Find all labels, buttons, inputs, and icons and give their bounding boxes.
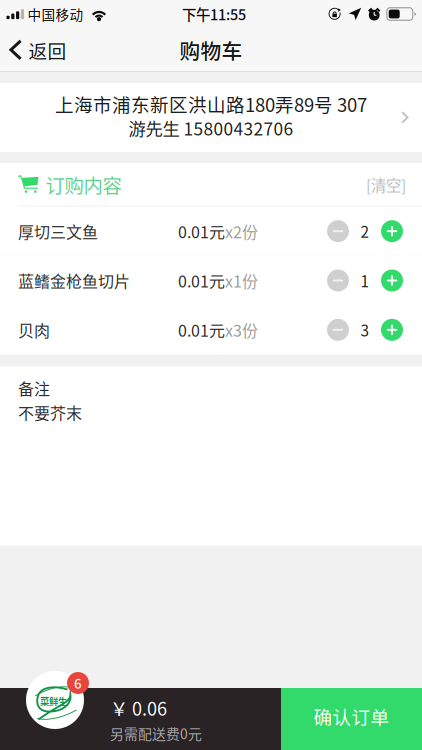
staticText: 上海市浦东新区洪山路180弄89号 307 — [55, 90, 367, 117]
staticText: 备注 — [18, 376, 50, 400]
button[interactable]: Increase quantity — [381, 269, 403, 291]
staticText: 另需配送费0元 — [110, 723, 202, 743]
staticText: 下午11:55 — [182, 4, 246, 24]
button[interactable]: Increase quantity — [381, 319, 403, 341]
staticText: 购物车 — [179, 35, 242, 65]
staticText: 游先生 15800432706 — [128, 115, 293, 140]
staticText: 中国移动 — [27, 4, 83, 24]
staticText: 菜鲜生 — [40, 694, 67, 708]
staticText: 0.01元 — [178, 220, 225, 243]
staticText: 返回 — [28, 36, 66, 63]
button[interactable]: Increase quantity — [381, 220, 403, 242]
staticText: x2份 — [225, 220, 258, 243]
staticText: [清空] — [366, 174, 406, 196]
staticText: 厚切三文鱼 — [18, 220, 98, 243]
staticText: x1份 — [225, 269, 258, 292]
staticText: 6 — [74, 673, 82, 693]
button[interactable]: Decrease quantity — [327, 319, 349, 341]
staticText: 2 — [360, 220, 369, 242]
staticText: 不要芥末 — [18, 401, 82, 424]
staticText: 贝肉 — [18, 318, 50, 341]
staticText: 1 — [360, 269, 369, 292]
button[interactable]: 上海市浦东新区洪山路180弄89号 307 — [0, 83, 422, 152]
button[interactable]: Decrease quantity — [327, 220, 349, 242]
button[interactable]: 确认订单 — [281, 688, 422, 750]
staticText: 0.01元 — [178, 318, 225, 341]
staticText: ￥ 0.06 — [110, 695, 167, 721]
staticText: x3份 — [225, 318, 258, 341]
button[interactable]: [清空] — [350, 163, 422, 207]
staticText: 3 — [360, 319, 369, 341]
staticText: 蓝鳍金枪鱼切片 — [18, 269, 130, 292]
button[interactable]: 返回 — [0, 28, 78, 72]
staticText: 0.01元 — [178, 269, 225, 292]
staticText: 订购内容 — [45, 171, 121, 199]
staticText: 确认订单 — [313, 703, 389, 730]
button[interactable]: Decrease quantity — [327, 269, 349, 291]
